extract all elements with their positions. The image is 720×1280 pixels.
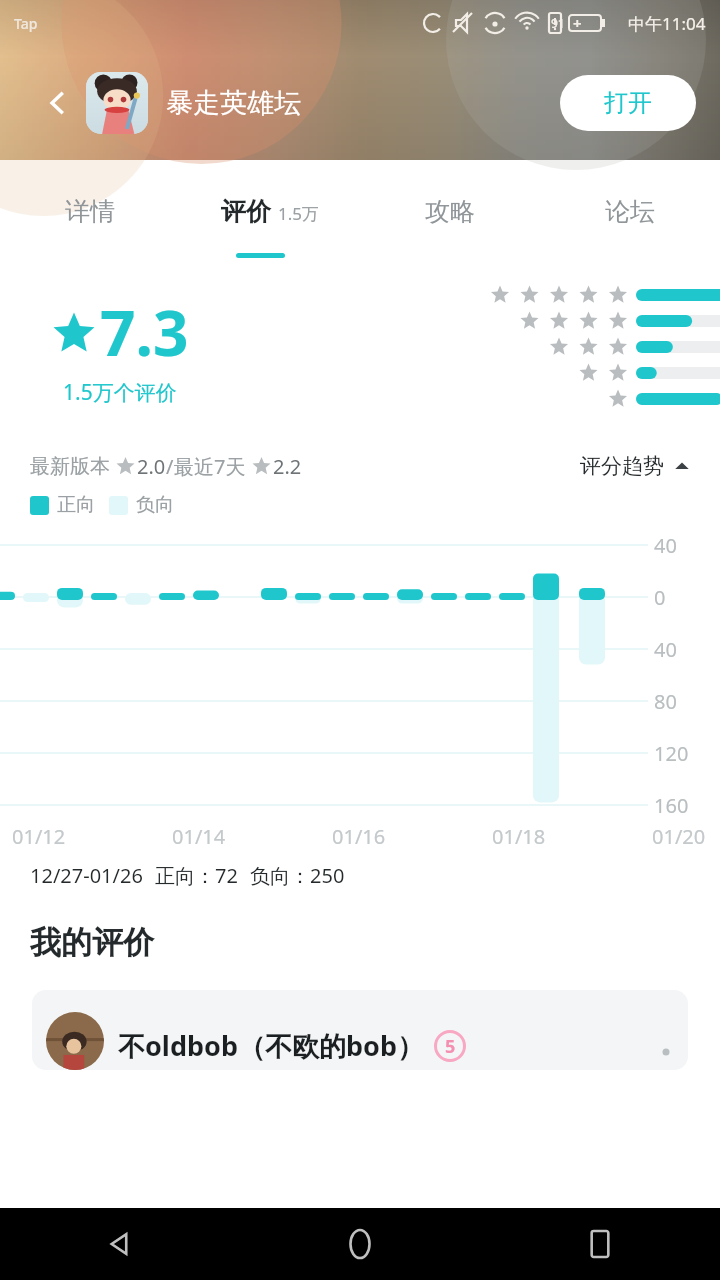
staticText: 80 (654, 688, 677, 715)
staticText: 01/20 (652, 823, 706, 850)
staticText: 2.0 (137, 453, 166, 480)
staticText: 评分趋势 (580, 453, 664, 479)
staticText: 不oldbob（不欧的bob） (118, 1027, 424, 1064)
button[interactable]: 不oldbob（不欧的bob） (32, 990, 688, 1070)
staticText: 我的评价 (30, 923, 154, 962)
staticText: 负向：250 (250, 862, 345, 889)
staticText: 0 (654, 584, 666, 611)
button[interactable]: 论坛 (540, 160, 720, 262)
staticText: 最新版本 (30, 454, 110, 479)
staticText: 正向：72 (155, 862, 238, 889)
staticText: 5 (445, 1034, 456, 1059)
staticText: 正向 (57, 493, 95, 517)
button[interactable]: Recents (480, 1208, 720, 1280)
staticText: + (573, 13, 582, 33)
button[interactable]: 评分趋势 (580, 453, 690, 479)
staticText: 01/18 (492, 823, 546, 850)
staticText: 1.5万个评价 (63, 378, 177, 407)
staticText: 暴走英雄坛 (166, 86, 301, 120)
button[interactable]: 打开 (560, 75, 696, 131)
staticText: / (166, 453, 174, 480)
button[interactable]: 评价 (180, 160, 360, 262)
staticText: 论坛 (605, 196, 655, 227)
staticText: 120 (654, 740, 689, 767)
staticText: 详情 (65, 196, 115, 227)
staticText: 攻略 (425, 196, 475, 227)
staticText: 负向 (136, 493, 174, 517)
staticText: Tap (14, 14, 38, 33)
staticText: 01/14 (172, 823, 226, 850)
staticText: 40 (654, 532, 677, 559)
staticText: 40 (654, 636, 677, 663)
staticText: 最近7天 (174, 453, 246, 480)
staticText: 160 (654, 792, 689, 819)
staticText: 2.2 (273, 453, 302, 480)
staticText: 7.3 (100, 290, 189, 374)
staticText: 评价 (221, 196, 271, 227)
button[interactable]: Back (38, 83, 78, 123)
staticText: 中午11:04 (628, 12, 706, 35)
staticText: 1.5万 (278, 202, 320, 225)
staticText: 01/12 (12, 823, 66, 850)
staticText: 91 (551, 15, 565, 31)
button[interactable]: Home (240, 1208, 480, 1280)
button[interactable]: Back (0, 1208, 240, 1280)
staticText: 打开 (604, 88, 652, 118)
button[interactable]: 攻略 (360, 160, 540, 262)
button[interactable]: 详情 (0, 160, 180, 262)
staticText: 12/27-01/26 (30, 862, 143, 889)
staticText: 01/16 (332, 823, 386, 850)
